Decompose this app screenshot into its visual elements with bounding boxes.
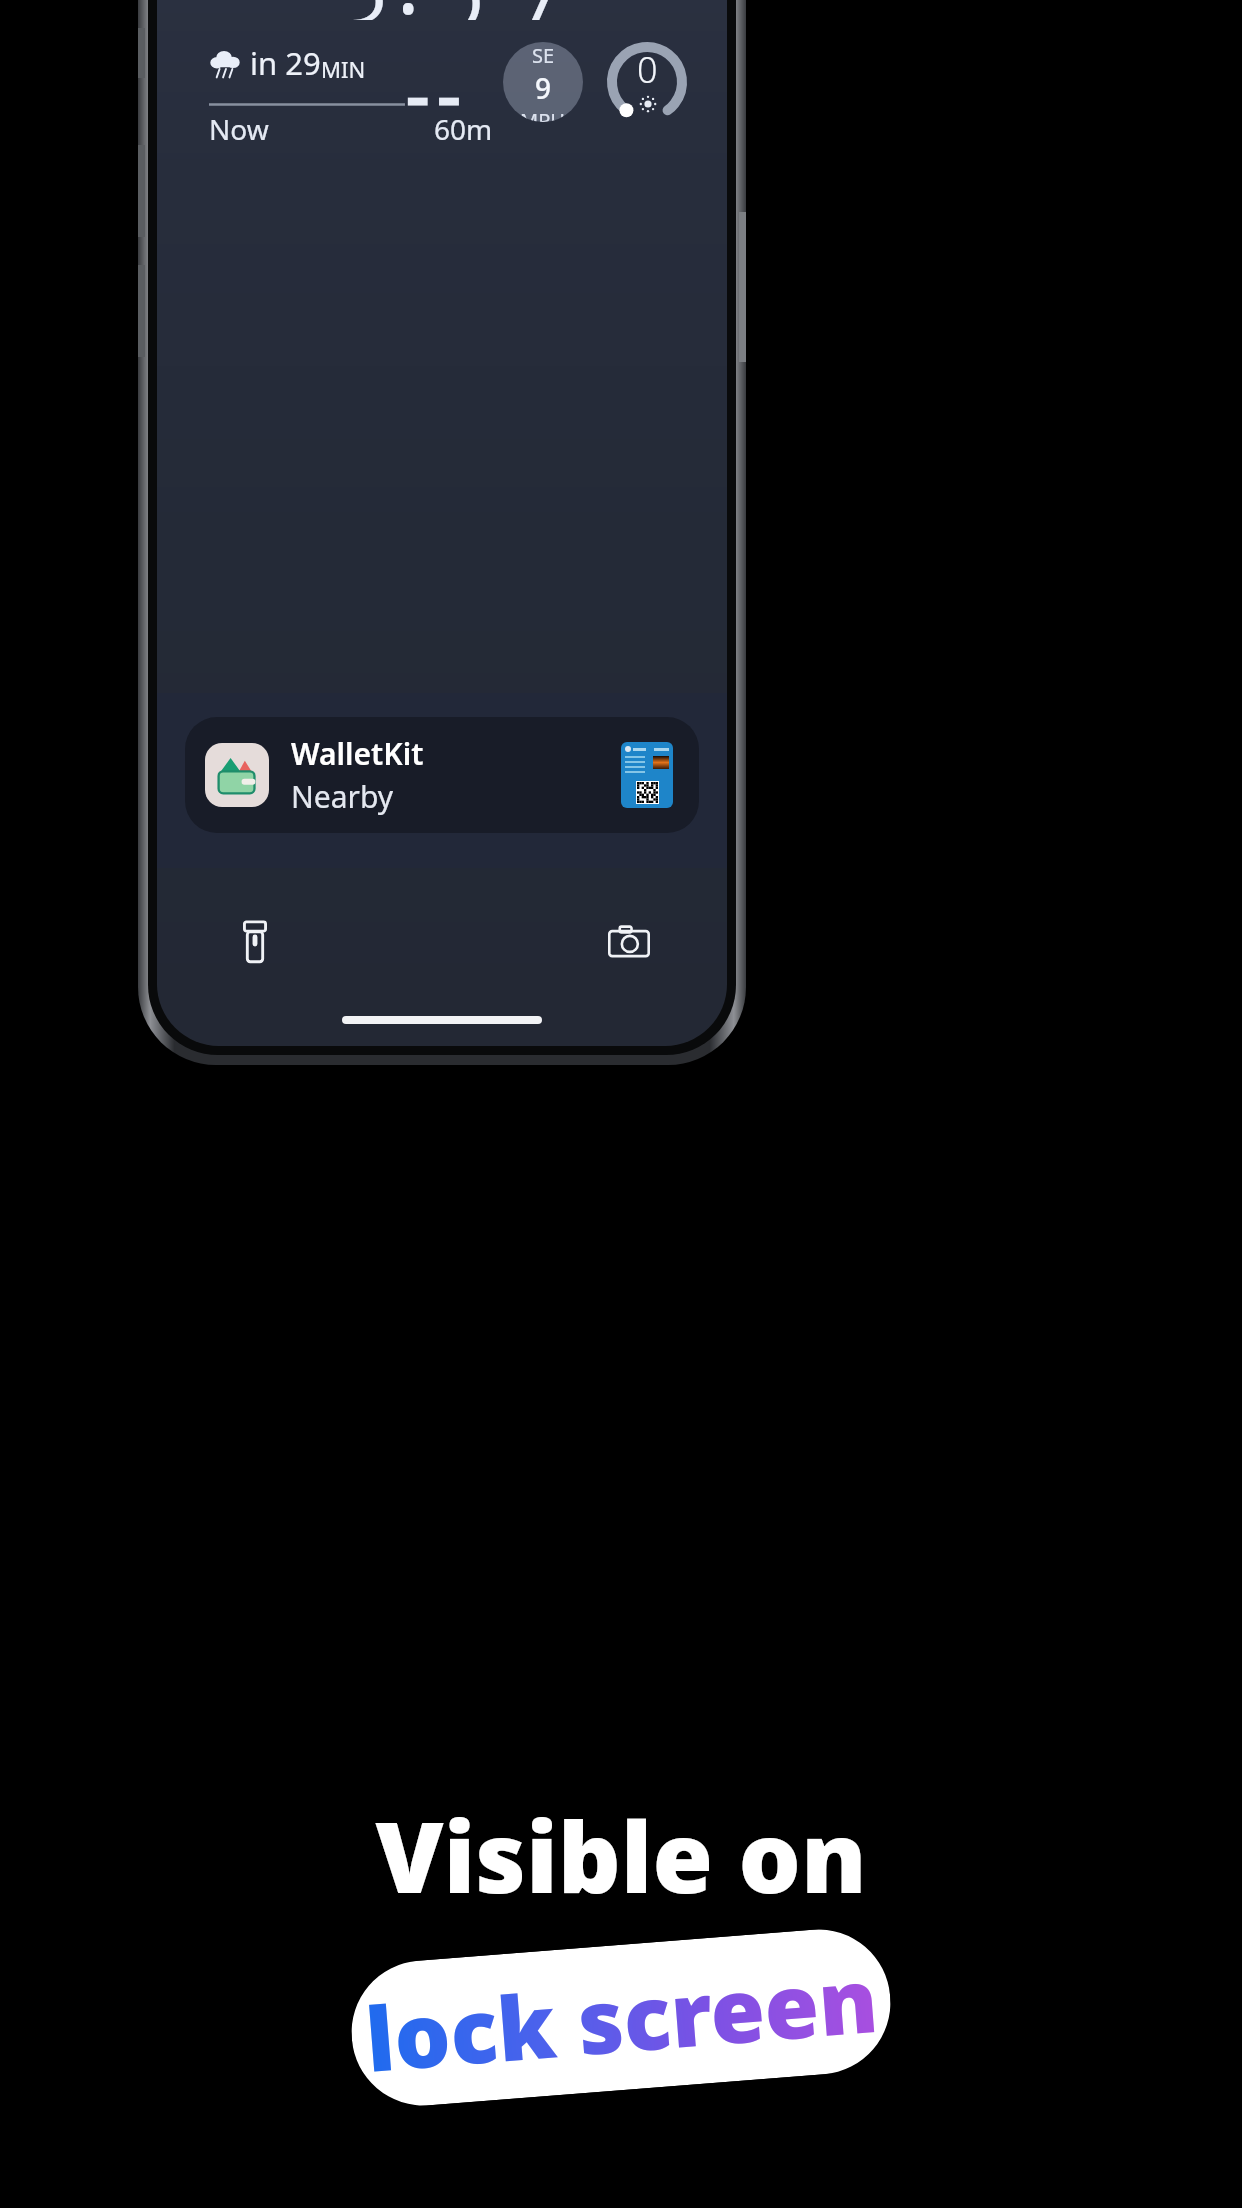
button[interactable]: UV index [607,42,687,122]
staticText: MIN [321,54,366,84]
button[interactable]: Camera [597,910,661,974]
button[interactable]: SE [503,42,583,122]
staticText: in 29 [250,42,321,84]
staticText: SE [532,42,555,69]
staticText: Visible on [375,1788,867,1921]
staticText: 3:27 [325,0,560,20]
button[interactable]: in 29 [209,42,493,148]
staticText: MPH [520,107,566,122]
button[interactable]: WalletKit [185,717,699,833]
staticText: 60m [434,110,493,148]
staticText: 9 [535,69,552,107]
staticText: lock screen [361,1938,882,2098]
staticText: 0 [637,45,658,94]
button[interactable]: Flashlight [223,910,287,974]
staticText: WalletKit [291,733,424,774]
staticText: Nearby [291,776,394,817]
staticText: Now [209,110,269,148]
